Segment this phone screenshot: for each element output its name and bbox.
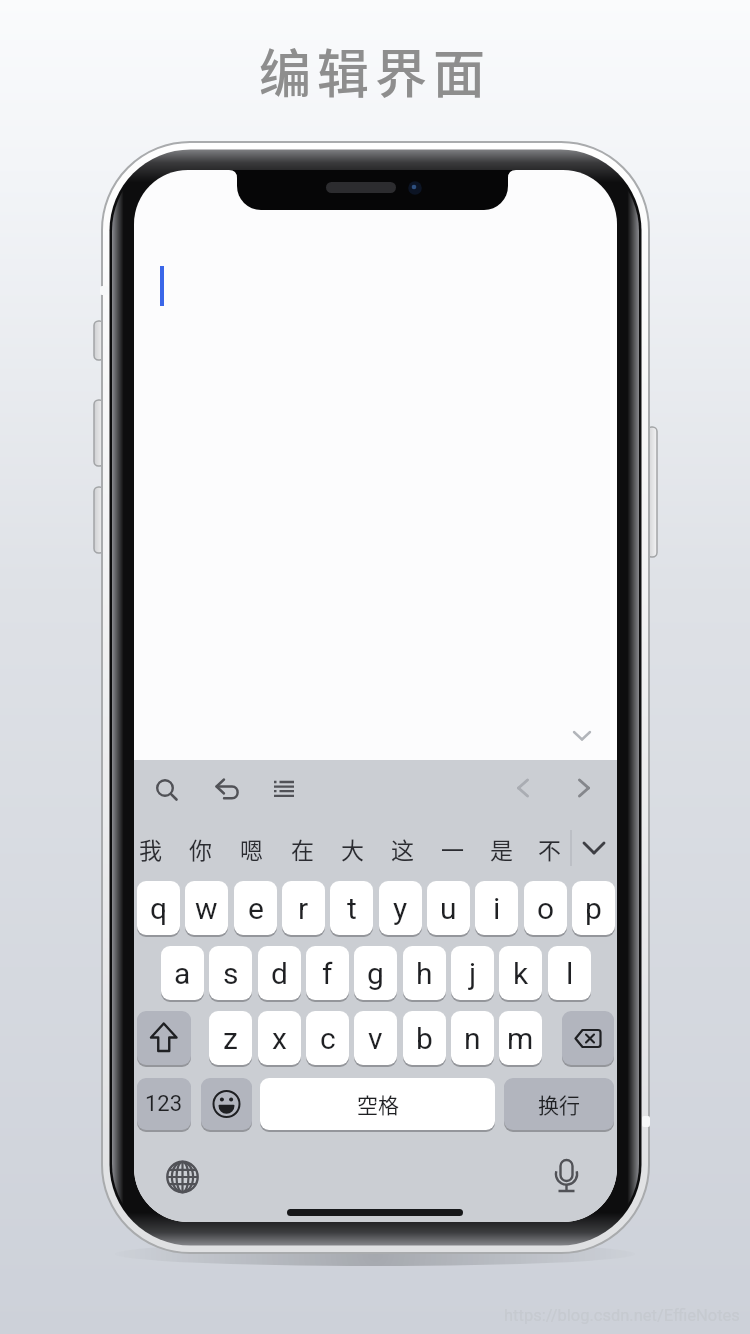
button[interactable]: w (185, 881, 228, 935)
button[interactable]: h (403, 946, 446, 1000)
button[interactable] (562, 1011, 614, 1065)
staticText: d (271, 956, 288, 991)
staticText: 你 (189, 832, 212, 865)
button[interactable]: c (306, 1011, 349, 1065)
button[interactable]: u (427, 881, 470, 935)
button[interactable]: g (354, 946, 397, 1000)
staticText: m (507, 1021, 534, 1056)
staticText: 这 (391, 832, 414, 865)
button[interactable]: r (282, 881, 325, 935)
button[interactable]: d (258, 946, 301, 1000)
button[interactable]: a (161, 946, 204, 1000)
button[interactable] (205, 768, 245, 808)
button[interactable]: q (137, 881, 180, 935)
staticText: 是 (490, 832, 513, 865)
staticText: 我 (139, 832, 162, 865)
button[interactable] (503, 768, 543, 808)
staticText: 一 (441, 832, 464, 865)
staticText: 在 (291, 832, 314, 865)
staticText: b (416, 1021, 433, 1056)
button[interactable]: e (234, 881, 277, 935)
button[interactable]: 这 (378, 826, 426, 870)
staticText: l (566, 956, 574, 991)
staticText: 不 (538, 832, 561, 865)
staticText: t (347, 891, 357, 926)
button[interactable]: 你 (176, 826, 224, 870)
staticText: g (367, 956, 384, 991)
button[interactable]: o (524, 881, 567, 935)
button[interactable]: v (354, 1011, 397, 1065)
staticText: e (248, 891, 264, 926)
button[interactable] (145, 768, 185, 808)
button[interactable]: 不 (525, 826, 573, 870)
staticText: z (223, 1021, 238, 1056)
staticText: f (322, 956, 333, 991)
staticText: https://blog.csdn.net/EffieNotes (504, 1306, 740, 1325)
button[interactable] (137, 1011, 191, 1065)
button[interactable]: k (499, 946, 542, 1000)
staticText: 123 (145, 1091, 183, 1117)
staticText: p (585, 891, 602, 926)
button[interactable]: 是 (477, 826, 525, 870)
button[interactable] (201, 1078, 252, 1130)
button[interactable]: 空格 (260, 1078, 495, 1130)
staticText: q (150, 891, 168, 926)
button[interactable]: j (451, 946, 494, 1000)
button[interactable]: 大 (328, 826, 376, 870)
button[interactable]: l (548, 946, 591, 1000)
button[interactable]: m (499, 1011, 542, 1065)
button[interactable] (578, 826, 614, 870)
button[interactable]: z (209, 1011, 252, 1065)
staticText: r (298, 891, 309, 926)
staticText: 空格 (357, 1089, 399, 1119)
button[interactable]: t (330, 881, 373, 935)
button[interactable]: 我 (134, 826, 174, 870)
staticText: u (440, 891, 457, 926)
button[interactable]: b (403, 1011, 446, 1065)
staticText: a (174, 956, 191, 991)
button[interactable]: 一 (428, 826, 476, 870)
staticText: x (272, 1021, 287, 1056)
staticText: y (393, 891, 408, 926)
staticText: 换行 (538, 1089, 580, 1119)
staticText: h (416, 956, 433, 991)
button[interactable]: p (572, 881, 615, 935)
button[interactable]: 嗯 (227, 826, 275, 870)
staticText: k (513, 956, 529, 991)
button[interactable]: x (258, 1011, 301, 1065)
staticText: s (223, 956, 239, 991)
staticText: i (493, 891, 501, 926)
staticText: 嗯 (240, 832, 263, 865)
staticText: j (469, 956, 477, 991)
staticText: 编辑界面 (259, 33, 492, 108)
button[interactable] (544, 1155, 588, 1199)
button[interactable]: 在 (278, 826, 326, 870)
button[interactable]: n (451, 1011, 494, 1065)
button[interactable]: i (475, 881, 518, 935)
button[interactable]: y (379, 881, 422, 935)
button[interactable] (264, 768, 304, 808)
button[interactable] (160, 1155, 204, 1199)
staticText: w (195, 891, 218, 926)
staticText: v (368, 1021, 383, 1056)
button[interactable]: 123 (137, 1078, 191, 1130)
button[interactable] (564, 768, 604, 808)
staticText: o (537, 891, 555, 926)
button[interactable]: f (306, 946, 349, 1000)
button[interactable]: 换行 (504, 1078, 614, 1130)
staticText: c (320, 1021, 336, 1056)
staticText: 大 (341, 832, 364, 865)
staticText: n (464, 1021, 481, 1056)
button[interactable]: s (209, 946, 252, 1000)
